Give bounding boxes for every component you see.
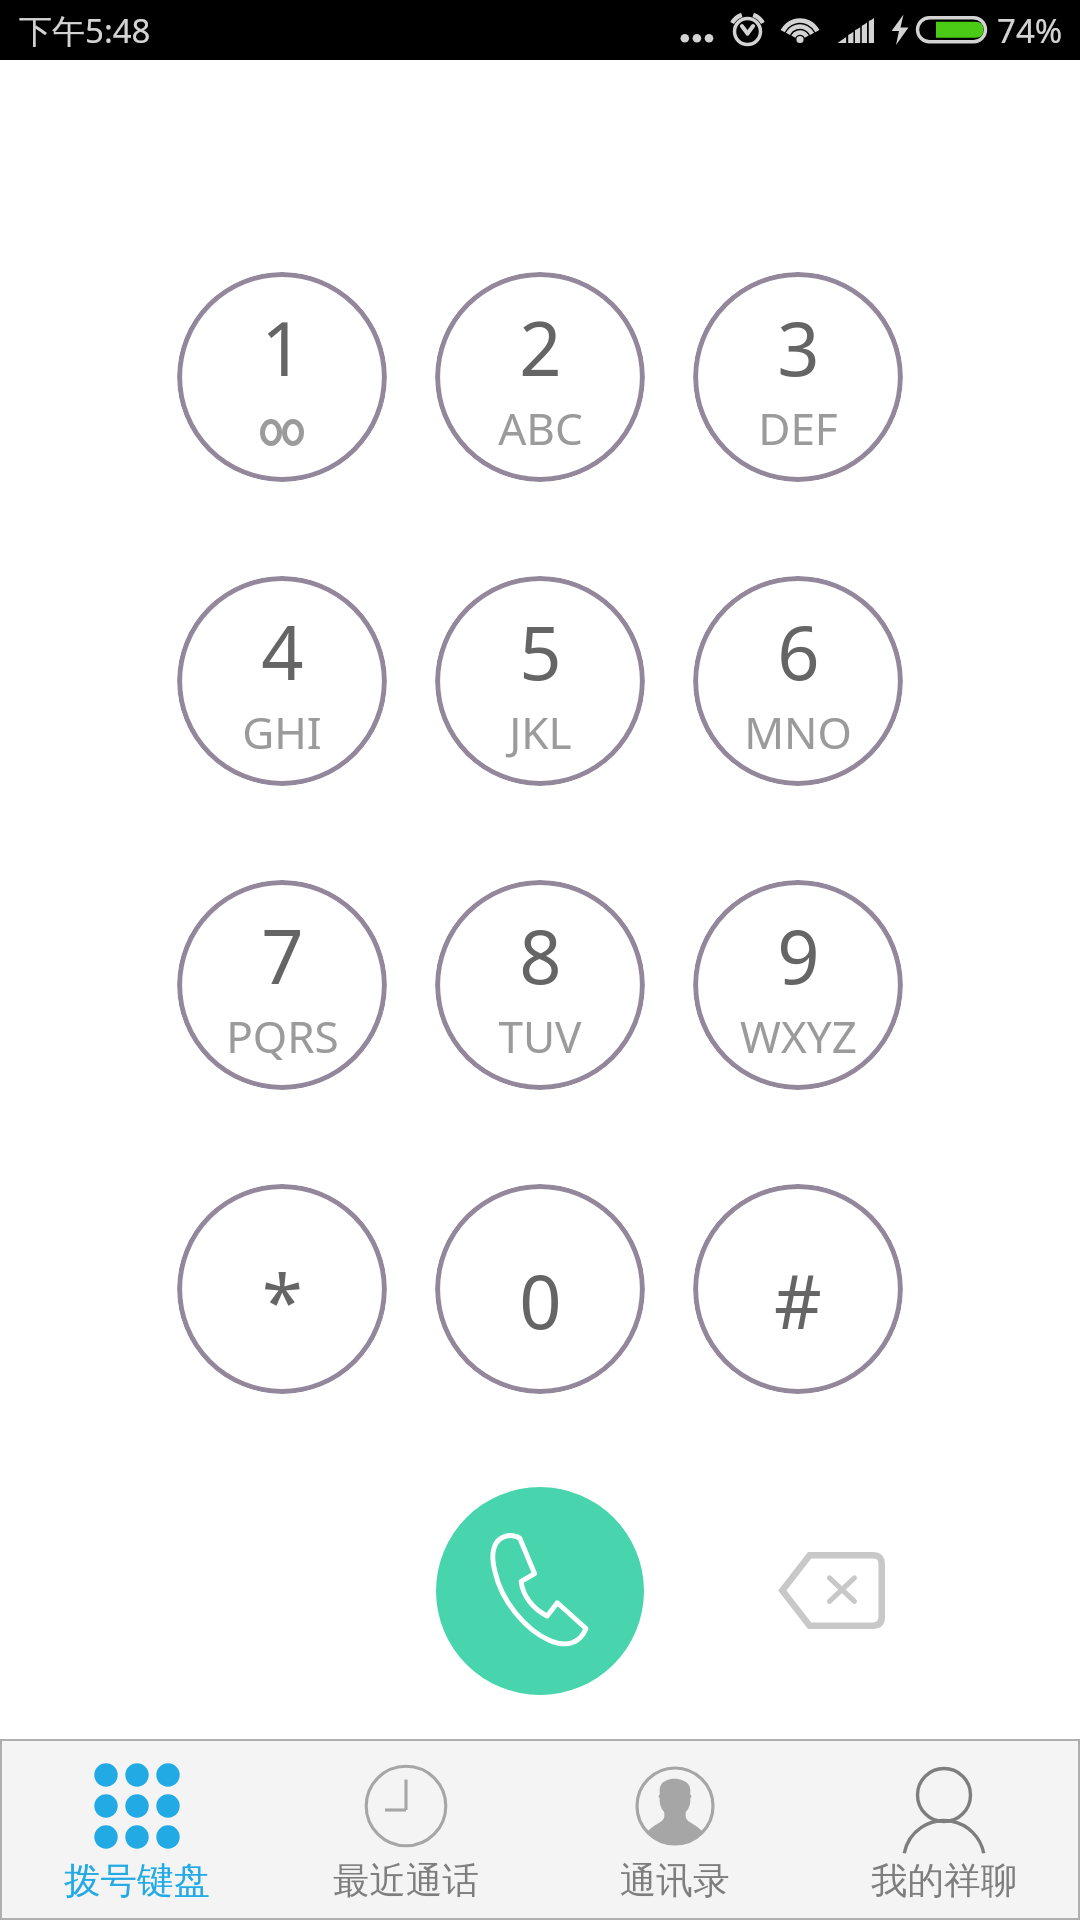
button[interactable]: Delete <box>742 1520 922 1660</box>
staticText: DEF <box>758 398 838 458</box>
button[interactable]: 0 <box>435 1184 645 1394</box>
staticText: 最近通话 <box>333 1858 479 1904</box>
button[interactable]: 3 <box>693 272 903 482</box>
button[interactable]: 通讯录 <box>540 1741 809 1918</box>
staticText: * <box>262 1250 303 1351</box>
staticText: 0 <box>519 1250 562 1351</box>
button[interactable]: 5 <box>435 576 645 786</box>
button[interactable]: 2 <box>435 272 645 482</box>
button[interactable]: 1 <box>177 272 387 482</box>
staticText: TUV <box>498 1006 582 1066</box>
button[interactable]: 9 <box>693 880 903 1090</box>
staticText: JKL <box>509 702 572 762</box>
button[interactable]: * <box>177 1184 387 1394</box>
staticText: MNO <box>744 702 852 762</box>
button[interactable]: # <box>693 1184 903 1394</box>
staticText: 下午5:48 <box>19 8 151 53</box>
staticText: 1 <box>261 297 304 398</box>
button[interactable]: 6 <box>693 576 903 786</box>
staticText: 3 <box>777 297 820 398</box>
button[interactable]: 拨号键盘 <box>2 1741 271 1918</box>
staticText: 拨号键盘 <box>64 1858 210 1904</box>
staticText: 4 <box>261 601 304 702</box>
staticText: 8 <box>519 905 562 1006</box>
staticText: PQRS <box>226 1006 339 1066</box>
staticText: 7 <box>261 905 304 1006</box>
staticText: 我的祥聊 <box>871 1858 1017 1904</box>
button[interactable]: 7 <box>177 880 387 1090</box>
staticText: 6 <box>777 601 820 702</box>
staticText: WXYZ <box>740 1006 857 1066</box>
staticText: 2 <box>519 297 562 398</box>
staticText: ABC <box>498 398 583 458</box>
button[interactable]: Call <box>436 1487 644 1695</box>
button[interactable]: 4 <box>177 576 387 786</box>
staticText: 通讯录 <box>620 1858 730 1904</box>
staticText: 9 <box>777 905 820 1006</box>
button[interactable]: 最近通话 <box>271 1741 540 1918</box>
staticText: 5 <box>519 601 562 702</box>
staticText: 74% <box>997 8 1063 53</box>
button[interactable]: 我的祥聊 <box>809 1741 1078 1918</box>
staticText: # <box>774 1250 822 1351</box>
staticText: GHI <box>242 702 322 762</box>
button[interactable]: 8 <box>435 880 645 1090</box>
